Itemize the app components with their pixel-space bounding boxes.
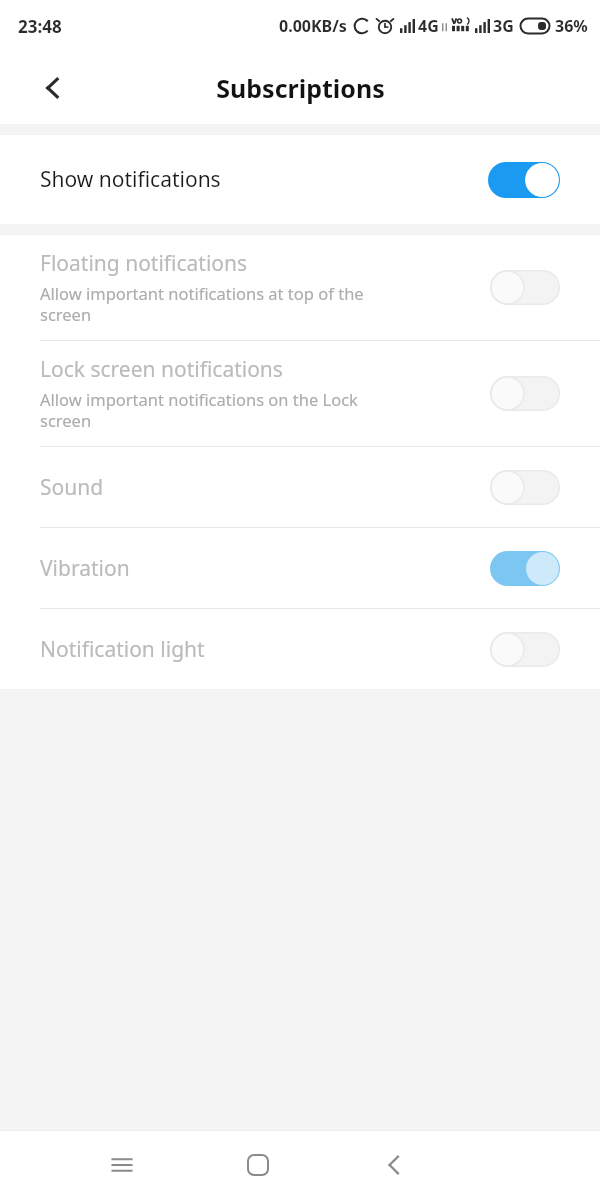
staticText: Allow important notifications at top of …: [40, 282, 364, 326]
button[interactable]: Show notifications: [0, 135, 600, 224]
button[interactable]: Lock screen notifications: [0, 341, 600, 446]
button[interactable]: Notification light: [0, 609, 600, 689]
staticText: Allow important notifications on the Loc…: [40, 388, 358, 432]
staticText: Notification light: [40, 635, 205, 664]
button[interactable]: Back: [22, 57, 84, 119]
button[interactable]: Sound: [0, 447, 600, 527]
button[interactable]: Home: [230, 1137, 286, 1193]
staticText: Subscriptions: [216, 71, 385, 105]
button[interactable]: Floating notifications: [0, 235, 600, 340]
staticText: 36%: [555, 15, 588, 37]
staticText: Lock screen notifications: [40, 355, 283, 384]
button[interactable]: Recent apps: [94, 1137, 150, 1193]
staticText: 0.00KB/s: [279, 15, 347, 37]
staticText: Vibration: [40, 554, 130, 583]
button[interactable]: Vibration: [0, 528, 600, 608]
button[interactable]: Back: [366, 1137, 422, 1193]
staticText: Show notifications: [40, 165, 221, 194]
staticText: Sound: [40, 473, 104, 502]
staticText: 4G: [418, 15, 439, 37]
staticText: 3G: [493, 15, 514, 37]
staticText: Floating notifications: [40, 249, 248, 278]
staticText: 23:48: [18, 15, 62, 38]
